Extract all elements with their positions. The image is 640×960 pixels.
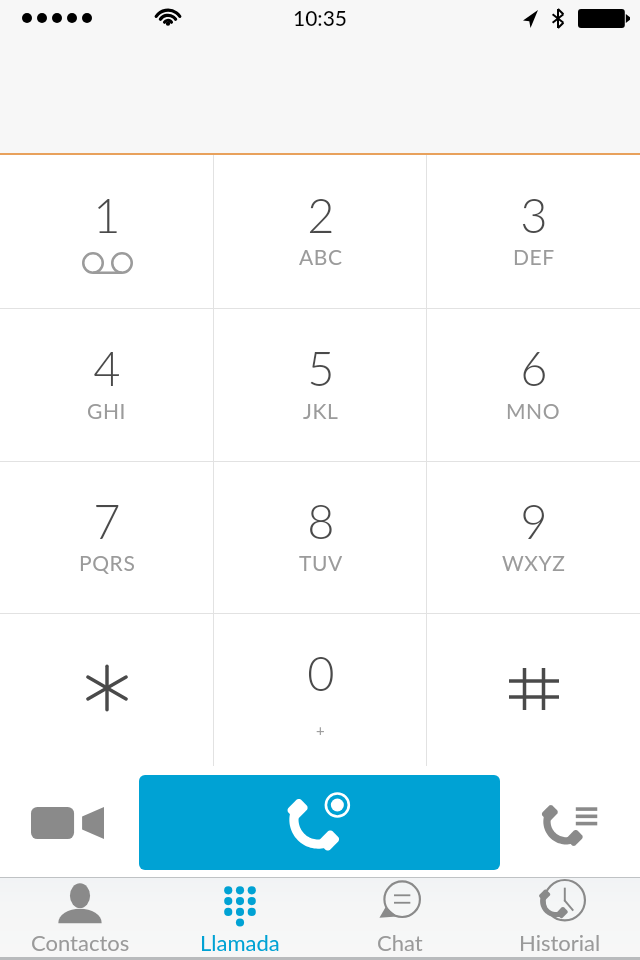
- button[interactable]: [0, 614, 214, 766]
- staticText: 7: [93, 493, 121, 549]
- staticText: 1: [93, 187, 121, 243]
- button[interactable]: Llamada: [160, 878, 320, 957]
- staticText: GHI: [87, 398, 127, 423]
- button[interactable]: Video call: [0, 767, 139, 878]
- button[interactable]: 0: [214, 614, 427, 766]
- button[interactable]: Call history: [500, 767, 640, 878]
- button[interactable]: 9: [427, 462, 640, 613]
- staticText: 4: [93, 340, 121, 396]
- staticText: MNO: [506, 398, 561, 423]
- staticText: Chat: [377, 929, 423, 955]
- staticText: DEF: [513, 244, 555, 269]
- staticText: 6: [520, 340, 548, 396]
- button[interactable]: Contactos: [0, 878, 160, 957]
- staticText: PQRS: [79, 550, 136, 575]
- staticText: Historial: [519, 929, 601, 955]
- button[interactable]: 1: [0, 155, 214, 308]
- staticText: 0: [307, 645, 335, 701]
- button[interactable]: 3: [427, 155, 640, 308]
- button[interactable]: 4: [0, 309, 214, 461]
- staticText: 9: [520, 493, 548, 549]
- button[interactable]: 7: [0, 462, 214, 613]
- staticText: 2: [307, 187, 335, 243]
- staticText: 5: [307, 340, 335, 396]
- staticText: +: [316, 721, 326, 739]
- button[interactable]: 8: [214, 462, 427, 613]
- staticText: 10:35: [293, 5, 348, 30]
- button[interactable]: [427, 614, 640, 766]
- button[interactable]: Call: [139, 775, 500, 870]
- button[interactable]: 2: [214, 155, 427, 308]
- button[interactable]: 6: [427, 309, 640, 461]
- button[interactable]: Historial: [480, 878, 640, 957]
- staticText: WXYZ: [502, 550, 566, 575]
- staticText: 3: [520, 187, 548, 243]
- staticText: ABC: [299, 244, 343, 269]
- button[interactable]: 5: [214, 309, 427, 461]
- button[interactable]: Chat: [320, 878, 480, 957]
- staticText: Llamada: [200, 929, 280, 955]
- staticText: 8: [307, 493, 335, 549]
- staticText: TUV: [299, 550, 343, 575]
- staticText: Contactos: [31, 929, 130, 955]
- staticText: JKL: [303, 398, 339, 423]
